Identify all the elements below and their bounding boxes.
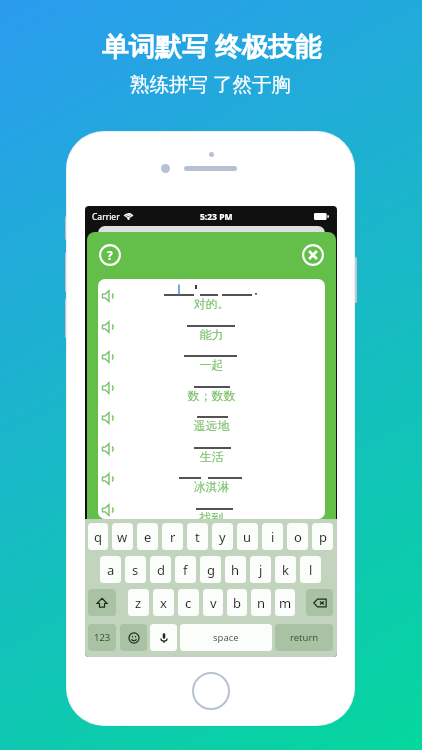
- button[interactable]: r: [162, 523, 183, 550]
- button[interactable]: u: [237, 523, 258, 550]
- staticText: ?: [107, 247, 113, 263]
- button[interactable]: b: [227, 589, 247, 616]
- staticText: v: [210, 594, 217, 612]
- button[interactable]: 123: [88, 624, 116, 651]
- button[interactable]: j: [250, 556, 271, 583]
- button[interactable]: 找到: [98, 496, 325, 519]
- staticText: 生活: [98, 449, 325, 464]
- staticText: f: [183, 561, 188, 579]
- button[interactable]: space: [180, 624, 272, 651]
- button[interactable]: q: [88, 523, 108, 550]
- button[interactable]: Emoji: [120, 624, 147, 651]
- staticText: r: [170, 528, 176, 546]
- staticText: k: [282, 561, 289, 579]
- staticText: 能力: [98, 327, 325, 342]
- staticText: l: [309, 561, 313, 579]
- button[interactable]: g: [200, 556, 221, 583]
- button[interactable]: h: [225, 556, 246, 583]
- button[interactable]: n: [251, 589, 271, 616]
- button[interactable]: Help: [99, 244, 121, 266]
- button[interactable]: 遥远地: [98, 404, 325, 433]
- button[interactable]: return: [275, 624, 333, 651]
- button[interactable]: Backspace: [306, 589, 333, 616]
- staticText: 一起: [98, 357, 325, 372]
- button[interactable]: 数；数数: [98, 374, 325, 403]
- button[interactable]: o: [287, 523, 308, 550]
- button[interactable]: Close: [302, 244, 324, 266]
- button[interactable]: y: [212, 523, 233, 550]
- button[interactable]: e: [137, 523, 158, 550]
- staticText: e: [144, 528, 152, 546]
- staticText: n: [257, 594, 266, 612]
- staticText: 找到: [98, 510, 325, 519]
- staticText: space: [213, 631, 239, 644]
- button[interactable]: Dictation: [150, 624, 177, 651]
- button[interactable]: z: [128, 589, 149, 616]
- staticText: 对的。: [98, 296, 325, 311]
- staticText: x: [160, 594, 167, 612]
- staticText: g: [207, 561, 215, 579]
- button[interactable]: v: [203, 589, 223, 616]
- staticText: o: [294, 528, 302, 546]
- staticText: 冰淇淋: [98, 479, 325, 494]
- button[interactable]: Shift: [88, 589, 116, 616]
- button[interactable]: i: [262, 523, 283, 550]
- staticText: 单词默写 终极技能: [102, 28, 321, 64]
- button[interactable]: d: [150, 556, 171, 583]
- button[interactable]: 一起: [98, 343, 325, 372]
- button[interactable]: p: [312, 523, 333, 550]
- staticText: 遥远地: [98, 418, 325, 433]
- button[interactable]: m: [275, 589, 295, 616]
- button[interactable]: a: [100, 556, 121, 583]
- button[interactable]: k: [275, 556, 296, 583]
- staticText: 熟练拼写 了然于胸: [130, 70, 292, 97]
- staticText: a: [107, 561, 115, 579]
- staticText: z: [135, 594, 142, 612]
- staticText: h: [231, 561, 240, 579]
- staticText: d: [157, 561, 165, 579]
- staticText: p: [319, 528, 327, 546]
- staticText: 数；数数: [98, 388, 325, 403]
- staticText: Carrier: [92, 211, 120, 223]
- staticText: q: [94, 528, 102, 546]
- staticText: 123: [94, 631, 111, 644]
- staticText: c: [185, 594, 192, 612]
- button[interactable]: x: [153, 589, 174, 616]
- button[interactable]: c: [178, 589, 199, 616]
- staticText: b: [233, 594, 241, 612]
- staticText: i: [271, 528, 275, 546]
- button[interactable]: 冰淇淋: [98, 465, 325, 494]
- button[interactable]: t: [187, 523, 208, 550]
- staticText: w: [117, 528, 128, 546]
- staticText: m: [279, 594, 292, 612]
- staticText: u: [243, 528, 252, 546]
- staticText: return: [290, 631, 319, 644]
- button[interactable]: w: [112, 523, 133, 550]
- staticText: y: [219, 528, 226, 546]
- button[interactable]: s: [125, 556, 146, 583]
- staticText: j: [259, 561, 263, 579]
- button[interactable]: f: [175, 556, 196, 583]
- button[interactable]: 对的。: [98, 282, 325, 311]
- staticText: s: [132, 561, 139, 579]
- staticText: t: [195, 528, 200, 546]
- button[interactable]: 能力: [98, 313, 325, 342]
- button[interactable]: Home: [192, 672, 230, 710]
- button[interactable]: 生活: [98, 435, 325, 464]
- button[interactable]: l: [300, 556, 321, 583]
- staticText: 5:23 PM: [200, 211, 233, 223]
